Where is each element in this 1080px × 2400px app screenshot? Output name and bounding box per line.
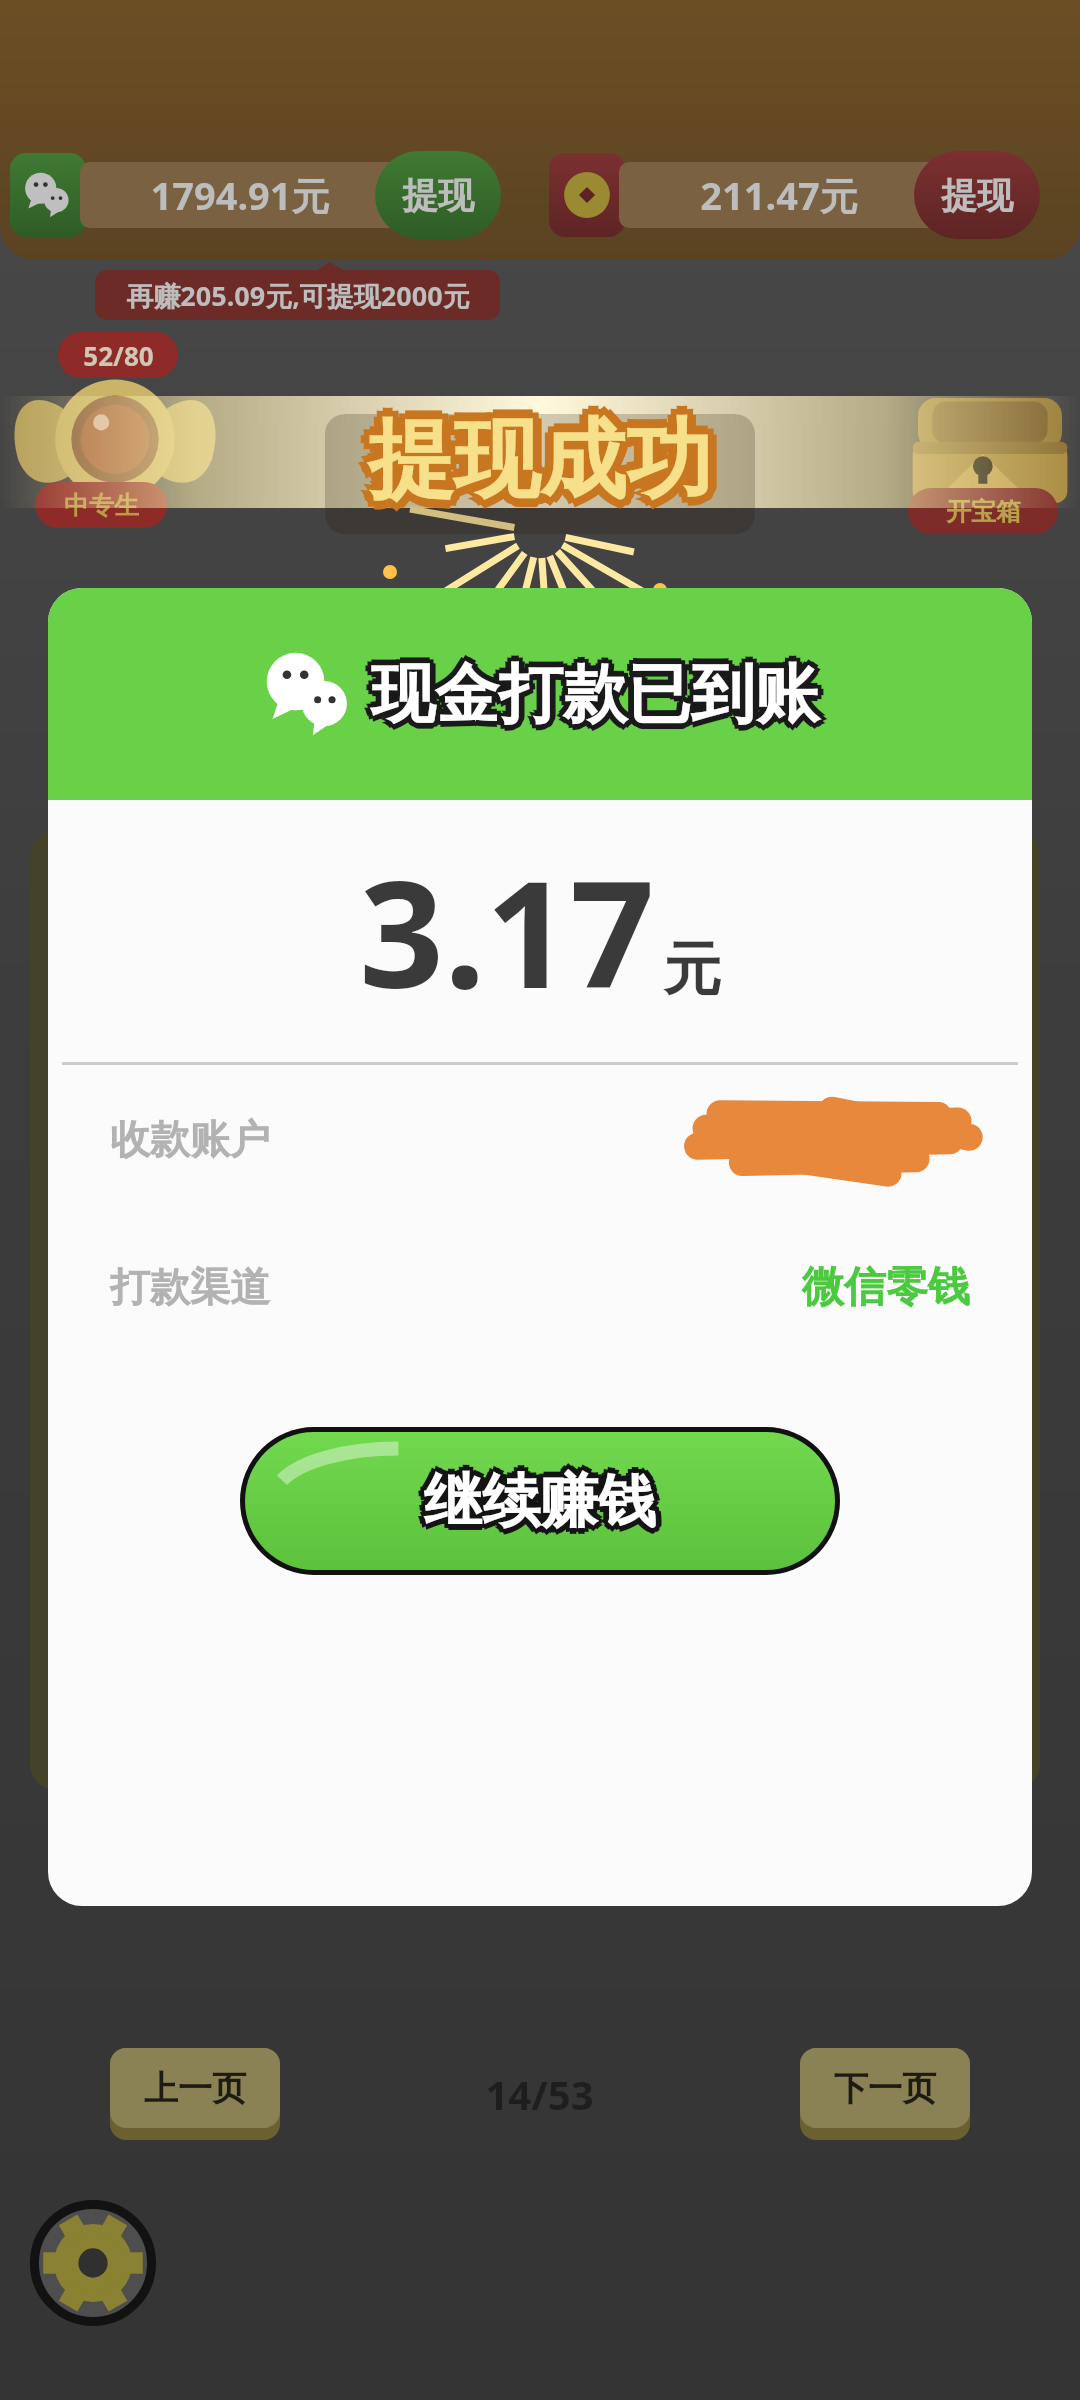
staticText: 提现成功 [374, 400, 718, 508]
button[interactable]: 下一页 [800, 2048, 970, 2140]
button[interactable]: 提现 [914, 151, 1040, 239]
staticText: 现金打款已到账 [375, 658, 823, 739]
staticText: 现金打款已到账 [371, 648, 819, 729]
staticText: 14/53 [485, 2067, 594, 2121]
staticText: 现金打款已到账 [375, 650, 823, 731]
button[interactable]: 继续赚钱 [245, 1432, 835, 1570]
staticText: 继续赚钱 [418, 1465, 650, 1538]
button[interactable]: 上一页 [110, 2048, 280, 2140]
staticText: 提现 [402, 173, 474, 218]
staticText: 提现成功 [377, 406, 721, 514]
staticText: 提现成功 [359, 406, 703, 514]
staticText: 3.17 [359, 830, 655, 1032]
staticText: 继续赚钱 [424, 1465, 656, 1538]
staticText: 52/80 [83, 338, 154, 373]
staticText: 开宝箱 [946, 496, 1021, 527]
staticText: 中专生 [64, 490, 139, 521]
staticText: 现金打款已到账 [367, 650, 815, 731]
staticText: 继续赚钱 [428, 1469, 660, 1542]
staticText: 现金打款已到账 [371, 654, 819, 735]
staticText: 211.47元 [700, 169, 858, 221]
staticText: 1794.91元 [150, 169, 330, 221]
staticText: 微信零钱 [802, 1261, 970, 1314]
staticText: 下一页 [834, 2067, 936, 2110]
staticText: 上一页 [144, 2067, 246, 2110]
staticText: 提现成功 [368, 415, 712, 523]
staticText: 继续赚钱 [424, 1459, 656, 1532]
staticText: 现金打款已到账 [371, 660, 819, 741]
staticText: 继续赚钱 [420, 1469, 652, 1542]
staticText: 现金打款已到账 [367, 658, 815, 739]
staticText: 提现成功 [368, 406, 712, 514]
staticText: 收款账户 [110, 1114, 270, 1164]
button[interactable]: 提现 [375, 151, 501, 239]
staticText: 提现成功 [362, 400, 706, 508]
staticText: 再赚205.09元,可提现2000元 [126, 277, 470, 314]
staticText: 现金打款已到账 [377, 654, 825, 735]
staticText: 提现 [941, 173, 1013, 218]
staticText: 现金打款已到账 [365, 654, 813, 735]
staticText: 继续赚钱 [424, 1471, 656, 1544]
staticText: 元 [663, 933, 721, 1006]
staticText: 提现成功 [374, 412, 718, 520]
staticText: 提现成功 [362, 412, 706, 520]
staticText: 继续赚钱 [430, 1465, 662, 1538]
button[interactable]: Settings [32, 2202, 154, 2324]
button[interactable]: 开宝箱 [900, 370, 1080, 545]
staticText: 提现成功 [368, 397, 712, 505]
staticText: 打款渠道 [110, 1262, 270, 1312]
staticText: 继续赚钱 [428, 1461, 660, 1534]
staticText: 继续赚钱 [420, 1461, 652, 1534]
